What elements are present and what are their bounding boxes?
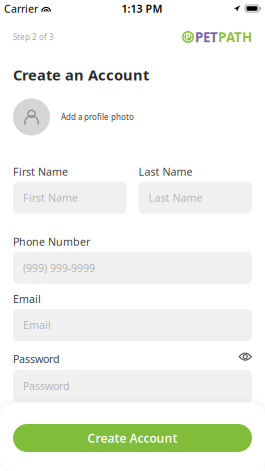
staticText: Password: [13, 352, 60, 366]
staticText: Create Account: [87, 430, 177, 446]
staticText: Email: [23, 318, 51, 332]
staticText: Last Name: [148, 191, 202, 205]
staticText: Phone Number: [13, 235, 90, 249]
staticText: PATH: [218, 28, 252, 46]
staticText: Password: [23, 379, 70, 393]
staticText: Carrier: [4, 1, 38, 16]
staticText: Last Name: [138, 164, 192, 179]
button[interactable]: Create Account: [13, 424, 252, 452]
staticText: Create an Account: [13, 65, 149, 84]
staticText: Email: [13, 292, 41, 306]
staticText: First Name: [13, 164, 68, 179]
staticText: (999) 999-9999: [23, 261, 95, 275]
button[interactable]: Show password: [238, 352, 252, 361]
staticText: Add a profile photo: [61, 112, 134, 122]
staticText: First Name: [23, 191, 78, 205]
staticText: PET: [195, 28, 218, 46]
staticText: 1:13 PM: [122, 1, 163, 16]
button[interactable]: Add a profile photo: [0, 84, 265, 135]
staticText: Step 2 of 3: [13, 32, 54, 42]
